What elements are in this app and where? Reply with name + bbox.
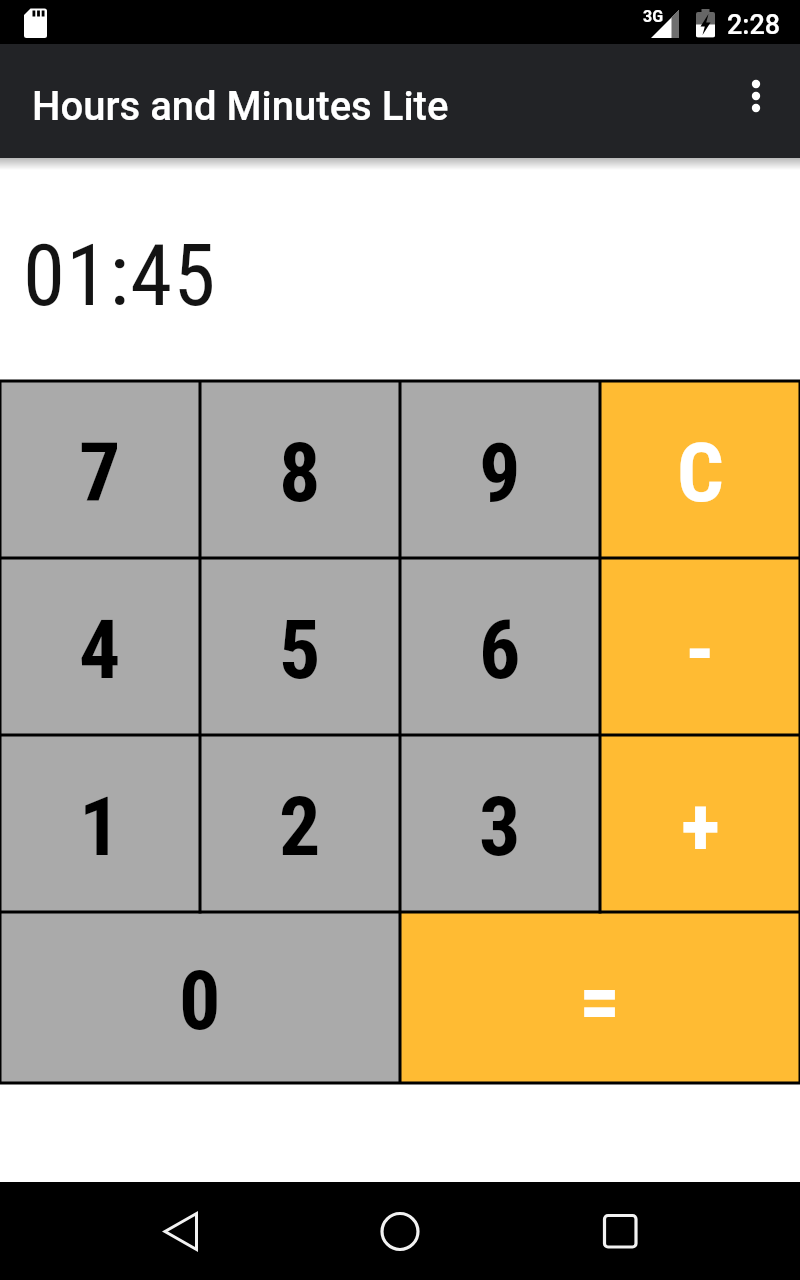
button[interactable]: C xyxy=(600,381,800,558)
button[interactable]: 7 xyxy=(0,381,200,558)
button[interactable]: 9 xyxy=(400,381,600,558)
staticText: Hours and Minutes Lite xyxy=(32,83,449,130)
button[interactable] xyxy=(585,1196,655,1266)
staticText: 3G xyxy=(643,7,664,26)
staticText: = xyxy=(579,953,621,1049)
staticText: 1 xyxy=(79,779,121,875)
staticText: 0 xyxy=(179,953,221,1049)
staticText: 4 xyxy=(79,602,121,698)
staticText: 5 xyxy=(279,602,321,698)
button[interactable]: - xyxy=(600,558,800,735)
staticText: 9 xyxy=(479,425,521,521)
staticText: - xyxy=(685,602,715,698)
staticText: 2:28 xyxy=(727,9,781,41)
staticText: 01:45 xyxy=(23,226,217,326)
button[interactable]: + xyxy=(600,735,800,912)
button[interactable] xyxy=(145,1196,215,1266)
button[interactable]: 1 xyxy=(0,735,200,912)
staticText: 3 xyxy=(479,779,521,875)
staticText: 8 xyxy=(279,425,321,521)
button[interactable] xyxy=(365,1196,435,1266)
button[interactable]: = xyxy=(400,912,800,1083)
button[interactable]: 0 xyxy=(0,912,400,1083)
staticText: 6 xyxy=(479,602,521,698)
staticText: + xyxy=(681,779,720,875)
staticText: C xyxy=(677,425,724,521)
button[interactable]: 4 xyxy=(0,558,200,735)
button[interactable] xyxy=(726,71,786,131)
button[interactable]: 8 xyxy=(200,381,400,558)
staticText: 2 xyxy=(279,779,321,875)
button[interactable]: 5 xyxy=(200,558,400,735)
button[interactable]: 3 xyxy=(400,735,600,912)
staticText: 7 xyxy=(79,425,121,521)
button[interactable]: 2 xyxy=(200,735,400,912)
button[interactable]: 6 xyxy=(400,558,600,735)
